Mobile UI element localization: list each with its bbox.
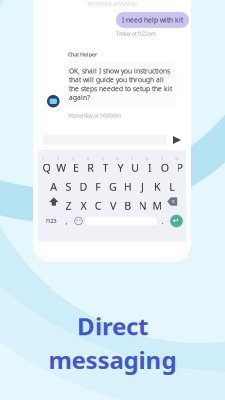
staticText: 9	[161, 156, 163, 161]
staticText: 3	[72, 156, 74, 161]
staticText: D	[79, 179, 87, 194]
staticText: 1	[42, 156, 44, 161]
staticText: messaging	[48, 344, 176, 376]
staticText: K	[154, 179, 161, 194]
staticText: ×	[171, 197, 175, 206]
staticText: O	[161, 160, 169, 175]
staticText: E	[73, 160, 79, 175]
staticText: 5	[101, 156, 103, 161]
staticText: S	[66, 179, 72, 194]
staticText: Q	[42, 160, 50, 175]
staticText: R	[87, 160, 94, 175]
staticText: X	[80, 198, 86, 213]
staticText: 0	[175, 156, 177, 161]
staticText: 2	[57, 156, 59, 161]
staticText: Today at 9:22am	[116, 30, 156, 37]
staticText: ↵	[173, 216, 180, 225]
staticText: N	[139, 198, 147, 213]
staticText: I need help with kit	[122, 15, 183, 24]
staticText: J	[141, 179, 144, 194]
staticText: P	[177, 160, 183, 175]
staticText: G	[109, 179, 117, 194]
staticText: 7	[131, 156, 133, 161]
staticText: F	[95, 179, 101, 194]
staticText: Z	[66, 198, 72, 213]
staticText: C	[95, 198, 102, 213]
staticText: M	[152, 198, 162, 213]
staticText: 4	[87, 156, 89, 161]
staticText: OK, shall I show you instructions that w…	[69, 66, 172, 102]
staticText: Yesterday at 10:00am	[68, 112, 121, 119]
staticText: .	[161, 216, 163, 226]
staticText: A	[50, 179, 57, 194]
staticText: Chat Helper	[68, 51, 97, 58]
staticText: W	[56, 160, 66, 175]
staticText: B	[124, 198, 131, 213]
staticText: L	[169, 179, 175, 194]
staticText: Y	[117, 160, 123, 175]
staticText: ,	[65, 216, 67, 226]
staticText: 6	[116, 156, 118, 161]
staticText: H	[124, 179, 132, 194]
staticText: Direct	[77, 310, 148, 342]
staticText: V	[110, 198, 116, 213]
staticText: I	[148, 160, 152, 175]
staticText: T	[103, 160, 109, 175]
staticText: Yesterday at 9:20am	[87, 0, 137, 7]
staticText: U	[131, 160, 139, 175]
staticText: ?123	[45, 217, 56, 225]
staticText: 8	[146, 156, 148, 161]
